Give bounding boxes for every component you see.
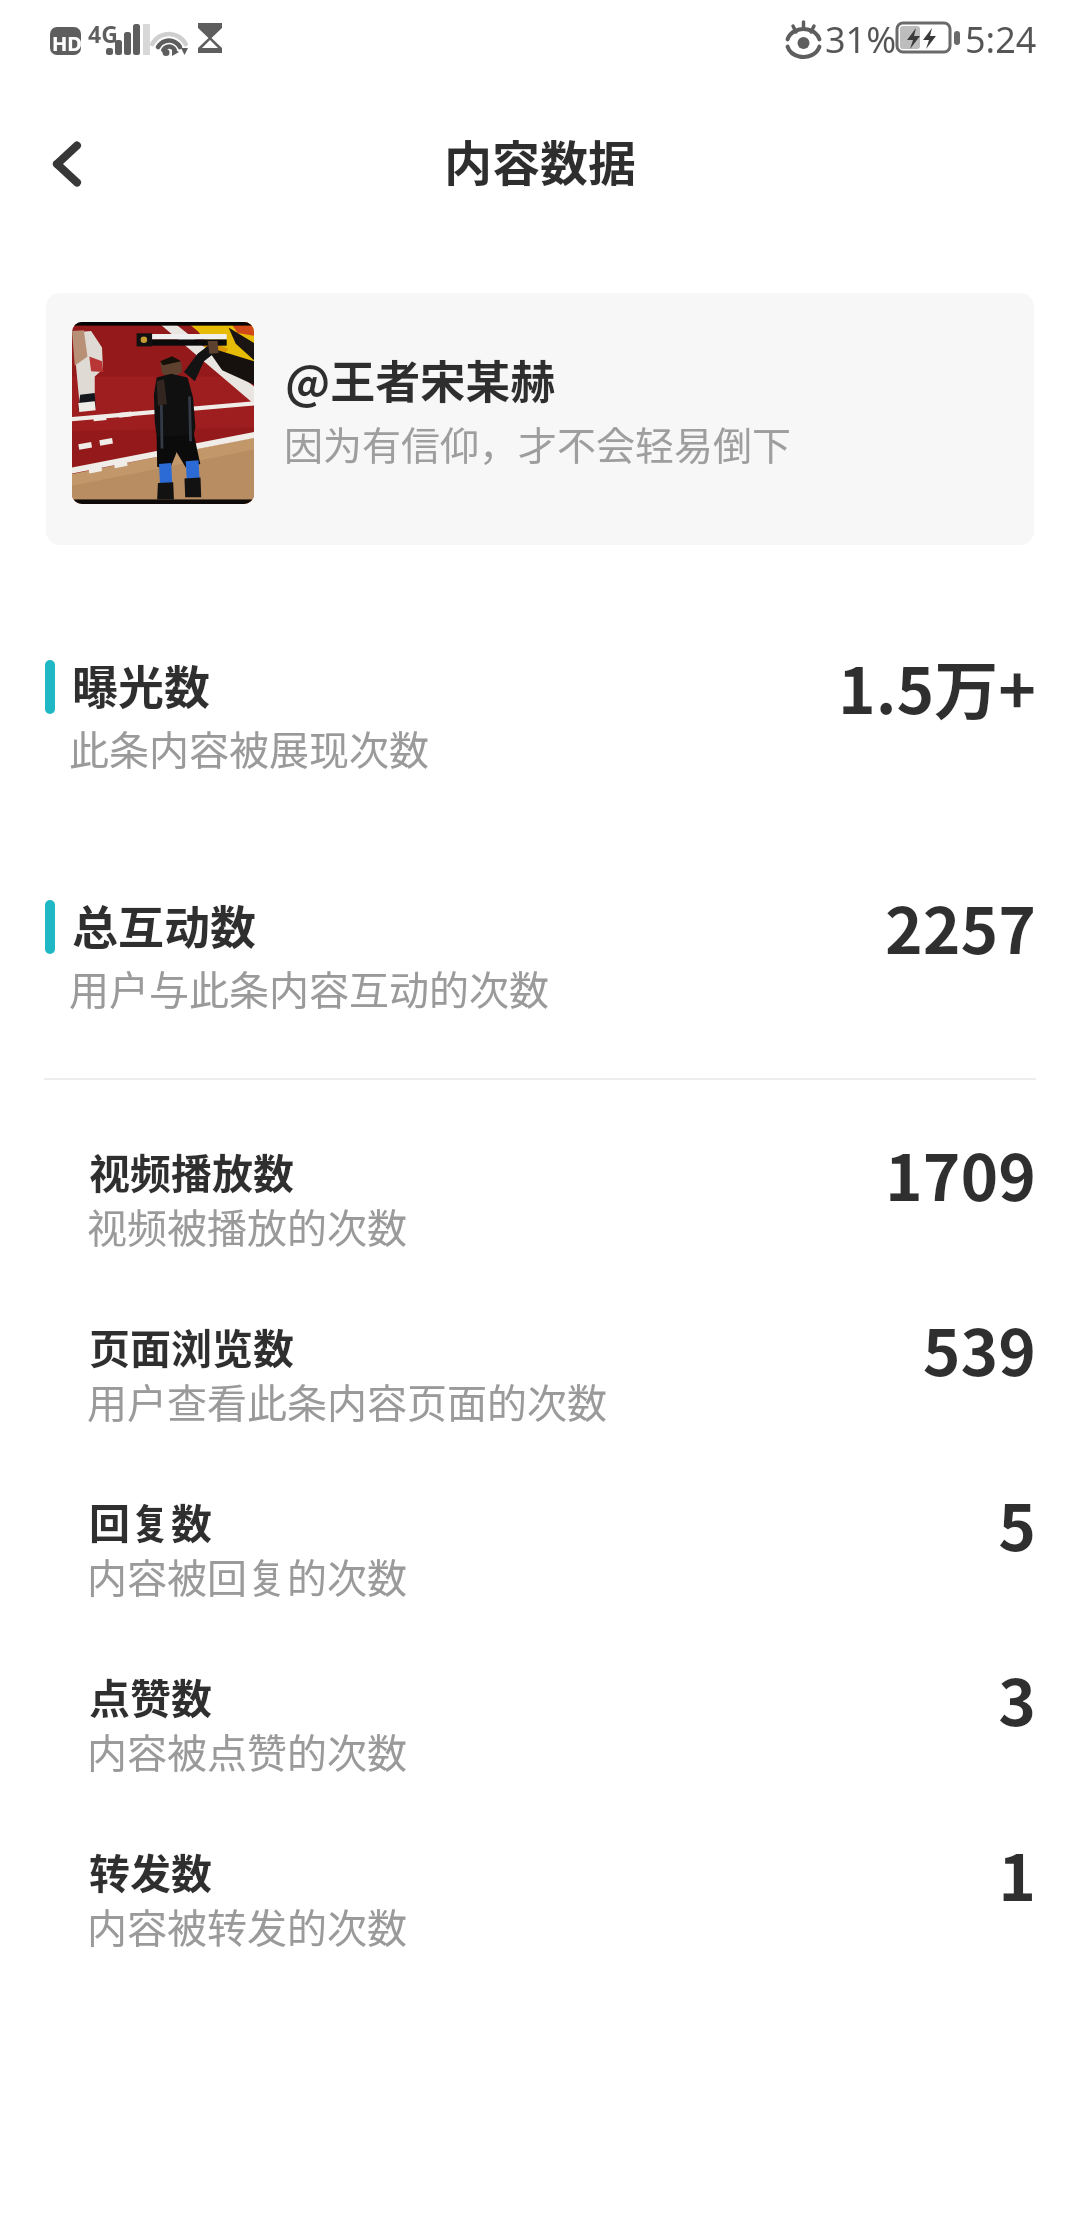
- staticText: 总互动数: [72, 891, 256, 958]
- staticText: 内容被点赞的次数: [87, 1722, 407, 1780]
- staticText: 用户与此条内容互动的次数: [69, 959, 549, 1017]
- button[interactable]: 总互动数: [0, 840, 1080, 1020]
- staticText: 视频播放数: [89, 1141, 294, 1200]
- staticText: 曝光数: [72, 651, 210, 718]
- button[interactable]: 点赞数: [0, 1665, 1080, 1840]
- staticText: 539: [0, 1302, 1036, 1395]
- staticText: 因为有信仰，才不会轻易倒下: [284, 415, 792, 471]
- staticText: 1709: [0, 1127, 1036, 1220]
- staticText: 内容被转发的次数: [87, 1897, 407, 1955]
- staticText: @王者宋某赫: [285, 347, 556, 412]
- button[interactable]: 转发数: [0, 1840, 1080, 2015]
- staticText: 页面浏览数: [89, 1316, 294, 1375]
- staticText: 视频被播放的次数: [87, 1197, 407, 1255]
- staticText: 5:24: [965, 15, 1037, 64]
- button[interactable]: 曝光数: [0, 600, 1080, 780]
- staticText: 31%: [825, 15, 897, 64]
- staticText: 转发数: [89, 1841, 212, 1900]
- staticText: 1.5万+: [0, 640, 1036, 733]
- button[interactable]: @王者宋某赫: [46, 293, 1034, 545]
- staticText: 2257: [0, 880, 1036, 973]
- staticText: HD: [52, 30, 81, 55]
- staticText: 此条内容被展现次数: [69, 719, 429, 777]
- staticText: 内容被回复的次数: [87, 1547, 407, 1605]
- button[interactable]: 页面浏览数: [0, 1315, 1080, 1490]
- staticText: 回复数: [89, 1491, 212, 1550]
- staticText: 1: [0, 1827, 1036, 1920]
- staticText: 4G: [88, 18, 118, 49]
- staticText: 3: [0, 1652, 1036, 1745]
- staticText: 内容数据: [0, 125, 1080, 195]
- button[interactable]: 回复数: [0, 1490, 1080, 1665]
- staticText: 用户查看此条内容页面的次数: [87, 1372, 607, 1430]
- button[interactable]: 视频播放数: [0, 1140, 1080, 1315]
- staticText: 点赞数: [89, 1666, 212, 1725]
- staticText: 5: [0, 1477, 1036, 1570]
- button[interactable]: Back: [12, 104, 122, 224]
